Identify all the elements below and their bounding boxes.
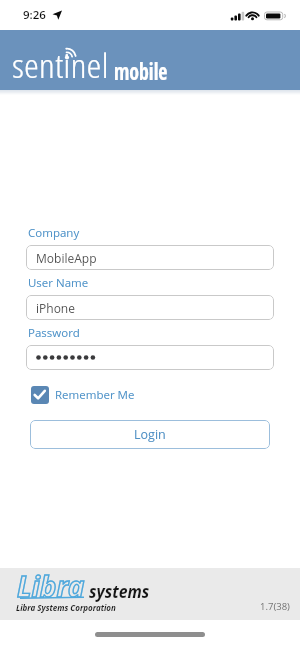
staticText: 9:26: [23, 7, 46, 23]
button[interactable]: MobileApp: [26, 245, 274, 270]
staticText: 1.7(38): [260, 600, 290, 613]
staticText: User Name: [28, 275, 89, 291]
staticText: MobileApp: [36, 250, 97, 266]
staticText: Password: [28, 325, 80, 341]
staticText: Company: [28, 225, 80, 241]
staticText: Remember Me: [55, 387, 135, 403]
staticText: mobile: [114, 55, 168, 87]
staticText: sentinel: [12, 43, 109, 88]
button[interactable]: iPhone: [26, 295, 274, 320]
button[interactable]: Login: [30, 420, 270, 449]
staticText: Libra Systems Corporation: [16, 602, 116, 613]
button[interactable]: [26, 345, 274, 370]
button[interactable]: Remember Me: [31, 386, 135, 404]
staticText: systems: [89, 580, 149, 603]
staticText: Login: [134, 426, 166, 443]
staticText: Libra: [17, 567, 85, 605]
staticText: iPhone: [36, 300, 75, 316]
